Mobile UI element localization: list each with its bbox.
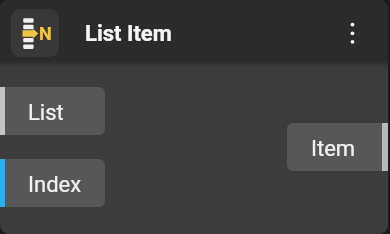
staticText: List Item — [85, 21, 172, 47]
button[interactable]: More options — [332, 10, 373, 51]
button[interactable]: Index — [0, 159, 105, 207]
staticText: Index — [28, 172, 82, 198]
button[interactable]: App icon — [11, 9, 59, 57]
staticText: N — [39, 23, 52, 44]
button[interactable]: Item — [287, 123, 382, 171]
staticText: Item — [311, 136, 356, 162]
staticText: List — [28, 100, 64, 126]
button[interactable]: List — [0, 87, 105, 135]
